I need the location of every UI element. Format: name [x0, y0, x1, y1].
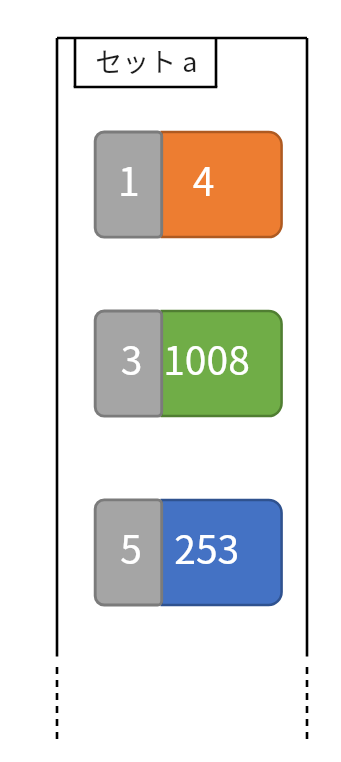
- button[interactable]: [0, 0, 341, 762]
